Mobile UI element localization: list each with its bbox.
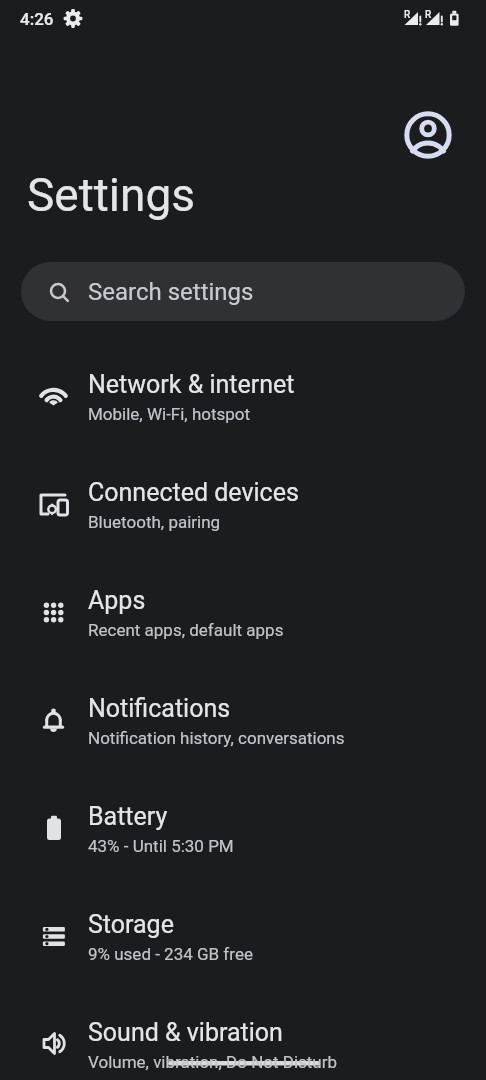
staticText: Bluetooth, pairing [88,512,221,532]
staticText: Notifications [88,694,231,723]
staticText: Network & internet [88,370,295,399]
staticText: 9% used - 234 GB free [88,944,253,964]
staticText: R [404,9,411,21]
staticText: Apps [88,586,146,615]
staticText: Search settings [88,278,254,306]
staticText: Battery [88,802,168,831]
staticText: Volume, vibration, Do Not Disturb [88,1052,338,1072]
staticText: Sound & vibration [88,1018,283,1047]
staticText: Connected devices [88,478,299,507]
staticText: 43% - Until 5:30 PM [88,836,234,856]
staticText: Settings [27,168,195,222]
staticText: 4:26 [20,9,54,29]
staticText: Mobile, Wi-Fi, hotspot [88,404,251,424]
staticText: Recent apps, default apps [88,620,284,640]
staticText: Notification history, conversations [88,728,345,748]
staticText: R [425,9,432,21]
staticText: Storage [88,910,174,939]
